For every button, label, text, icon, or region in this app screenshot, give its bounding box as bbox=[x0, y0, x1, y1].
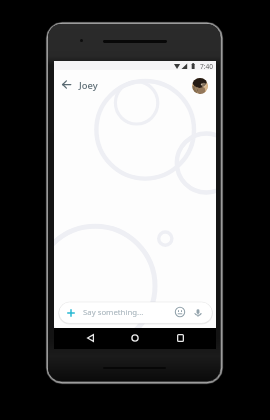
button[interactable]: Recent apps bbox=[172, 330, 188, 346]
button[interactable]: Add attachment bbox=[64, 306, 78, 320]
button[interactable]: Record voice message bbox=[191, 306, 205, 320]
staticText: Joey bbox=[79, 79, 98, 92]
button[interactable]: Back bbox=[82, 330, 98, 346]
staticText: Say something... bbox=[83, 307, 144, 318]
button[interactable]: Home bbox=[127, 330, 143, 346]
staticText: 7:40 bbox=[200, 62, 214, 71]
button[interactable]: Insert emoji bbox=[173, 305, 187, 319]
button[interactable]: Joey bbox=[79, 75, 98, 94]
button[interactable]: Navigate up bbox=[58, 76, 74, 92]
button[interactable]: Contact profile photo bbox=[192, 78, 208, 94]
